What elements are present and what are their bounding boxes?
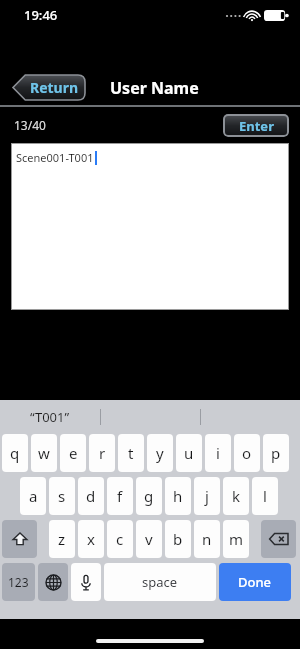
button[interactable]: t [118, 434, 144, 472]
staticText: d [86, 486, 96, 506]
staticText: q [10, 443, 20, 463]
staticText: 19:46 [24, 6, 58, 24]
button[interactable]: 123 [2, 563, 35, 601]
button[interactable]: v [136, 520, 162, 558]
staticText: Done [238, 573, 272, 591]
staticText: k [232, 486, 241, 506]
button[interactable]: z [49, 520, 75, 558]
button[interactable]: o [234, 434, 260, 472]
button[interactable]: x [78, 520, 104, 558]
button[interactable]: g [136, 477, 162, 515]
button[interactable]: m [223, 520, 249, 558]
staticText: space [142, 573, 178, 591]
staticText: m [229, 529, 244, 549]
button[interactable]: u [176, 434, 202, 472]
staticText: h [173, 486, 183, 506]
staticText: 13/40 [14, 117, 46, 133]
staticText: o [242, 443, 252, 463]
staticText: a [29, 486, 38, 506]
button[interactable]: a [20, 477, 46, 515]
button[interactable]: k [223, 477, 249, 515]
button[interactable]: d [78, 477, 104, 515]
button[interactable]: n [194, 520, 220, 558]
staticText: s [58, 486, 66, 506]
staticText: f [117, 486, 123, 506]
staticText: “T001” [30, 408, 70, 426]
staticText: z [58, 529, 66, 549]
staticText: 123 [8, 574, 29, 590]
button[interactable]: p [263, 434, 289, 472]
button[interactable]: b [165, 520, 191, 558]
staticText: t [128, 443, 134, 463]
staticText: Enter [239, 117, 274, 135]
button[interactable]: e [60, 434, 86, 472]
button[interactable]: y [147, 434, 173, 472]
staticText: u [184, 443, 194, 463]
staticText: Return [30, 78, 79, 97]
button[interactable]: s [49, 477, 75, 515]
staticText: w [38, 443, 50, 463]
staticText: Scene001-T001 [16, 150, 94, 165]
staticText: j [205, 486, 209, 506]
button[interactable]: Return [13, 75, 85, 100]
button[interactable]: l [252, 477, 278, 515]
staticText: User Name [110, 77, 199, 99]
button[interactable]: Done [219, 563, 291, 601]
button[interactable]: c [107, 520, 133, 558]
button[interactable]: q [2, 434, 28, 472]
staticText: n [202, 529, 212, 549]
staticText: v [145, 529, 153, 549]
staticText: l [263, 486, 267, 506]
staticText: p [271, 443, 281, 463]
staticText: r [99, 443, 106, 463]
staticText: b [173, 529, 183, 549]
button[interactable]: j [194, 477, 220, 515]
button[interactable]: Backspace [261, 520, 296, 558]
staticText: y [156, 443, 164, 463]
button[interactable]: Scene001-T001 [11, 143, 289, 310]
button[interactable]: i [205, 434, 231, 472]
button[interactable]: space [104, 563, 216, 601]
staticText: i [216, 443, 220, 463]
staticText: g [144, 486, 154, 506]
button[interactable]: r [89, 434, 115, 472]
button[interactable]: Globe [38, 563, 68, 601]
staticText: c [116, 529, 124, 549]
button[interactable]: Dictate [71, 563, 101, 601]
button[interactable]: h [165, 477, 191, 515]
staticText: e [69, 443, 78, 463]
staticText: x [87, 529, 95, 549]
button[interactable]: Enter [223, 114, 289, 137]
button[interactable]: w [31, 434, 57, 472]
button[interactable]: Shift [2, 520, 37, 558]
button[interactable]: f [107, 477, 133, 515]
